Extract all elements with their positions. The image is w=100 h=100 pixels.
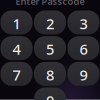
button[interactable]: 9 <box>67 62 99 86</box>
staticText: 3 <box>79 14 87 33</box>
button[interactable]: 3 <box>67 10 99 34</box>
button[interactable]: 6 <box>67 36 99 60</box>
staticText: 0 <box>46 91 54 100</box>
staticText: 6 <box>79 39 87 59</box>
staticText: 5 <box>46 39 54 59</box>
staticText: 8 <box>46 65 54 85</box>
button[interactable]: 8 <box>34 62 66 86</box>
staticText: 1 <box>12 14 20 33</box>
button[interactable]: 2 <box>34 10 66 34</box>
button[interactable]: 7 <box>0 62 32 86</box>
staticText: 9 <box>79 65 87 85</box>
staticText: 7 <box>12 65 20 85</box>
button[interactable]: 5 <box>34 36 66 60</box>
button[interactable]: 1 <box>0 10 32 34</box>
button[interactable]: 0 <box>34 87 66 100</box>
staticText: 2 <box>46 14 54 33</box>
staticText: 4 <box>12 39 20 59</box>
staticText: Enter Passcode <box>15 0 84 7</box>
button[interactable]: 4 <box>0 36 32 60</box>
